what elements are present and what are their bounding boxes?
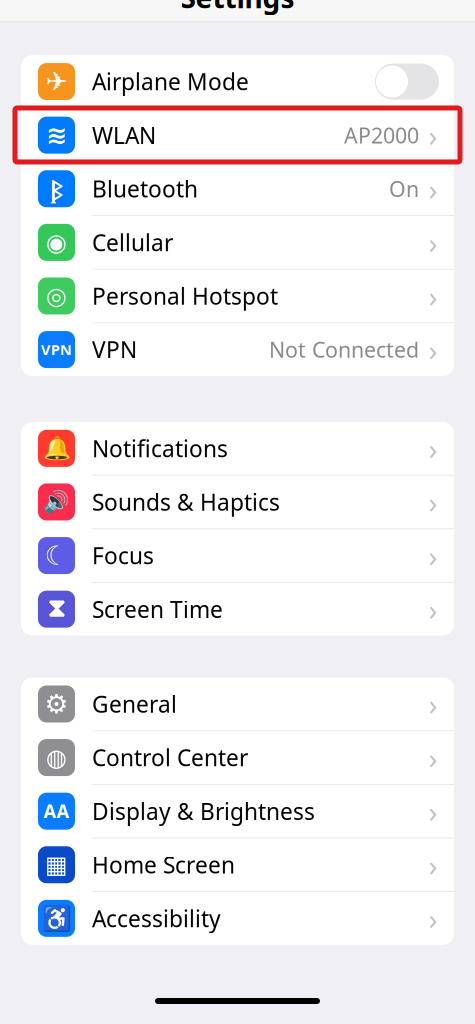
staticText: Bluetooth [92,174,198,204]
staticText: Home Screen [92,850,235,880]
button[interactable]: ⧗ [21,583,454,636]
staticText: ≋ [46,121,67,150]
staticText: › [428,330,437,369]
staticText: Personal Hotspot [92,281,278,311]
button[interactable]: ◉ [21,216,454,270]
staticText: VPN [92,334,137,365]
button[interactable]: 🔔 [21,422,454,476]
staticText: AA [43,799,69,824]
staticText: ⧗ [47,597,65,621]
staticText: › [428,536,437,575]
staticText: On [389,175,419,203]
staticText: Focus [92,540,154,571]
staticText: › [428,429,437,468]
button[interactable]: ᛒ [21,162,454,216]
staticText: › [428,223,437,262]
staticText: › [428,169,437,208]
button[interactable]: 🔊 [21,476,454,529]
staticText: ◎ [46,282,67,310]
staticText: Cellular [92,227,173,257]
staticText: Accessibility [92,903,221,933]
button[interactable]: ▦ [21,838,454,892]
button[interactable]: AA [21,785,454,838]
staticText: › [428,482,437,521]
button[interactable]: ☾ [21,529,454,583]
staticText: General [92,689,177,719]
staticText: Airplane Mode [92,66,249,97]
staticText: ᛒ [50,173,63,205]
staticText: Settings [180,0,294,16]
button[interactable]: VPN [21,323,454,376]
button[interactable]: ≋ [21,109,454,162]
staticText: Control Center [92,742,248,773]
staticText: › [428,899,437,938]
staticText: Sounds & Haptics [92,487,280,517]
staticText: 🔔 [42,435,70,461]
staticText: ◍ [46,744,67,771]
button[interactable]: ◎ [21,270,454,323]
staticText: ✈ [45,66,67,97]
staticText: Screen Time [92,594,223,624]
staticText: Display & Brightness [92,796,315,826]
staticText: 🔊 [43,490,70,514]
staticText: › [428,792,437,831]
staticText: › [428,684,437,723]
button[interactable]: ✈ [21,55,454,109]
staticText: VPN [41,340,72,359]
staticText: › [428,276,437,315]
staticText: ⚙ [44,689,68,719]
button[interactable]: ♿ [21,892,454,945]
staticText: Notifications [92,433,228,463]
staticText: ☾ [44,540,68,571]
staticText: › [428,590,437,629]
staticText: AP2000 [344,121,419,149]
staticText: › [428,845,437,884]
staticText: ▦ [45,851,68,878]
staticText: ◉ [46,229,67,256]
staticText: Not Connected [269,335,419,364]
staticText: ♿ [41,905,71,932]
staticText: › [428,116,437,155]
button[interactable]: ⚙ [21,678,454,731]
button[interactable]: ◍ [21,731,454,785]
staticText: › [428,738,437,777]
staticText: WLAN [92,120,156,150]
